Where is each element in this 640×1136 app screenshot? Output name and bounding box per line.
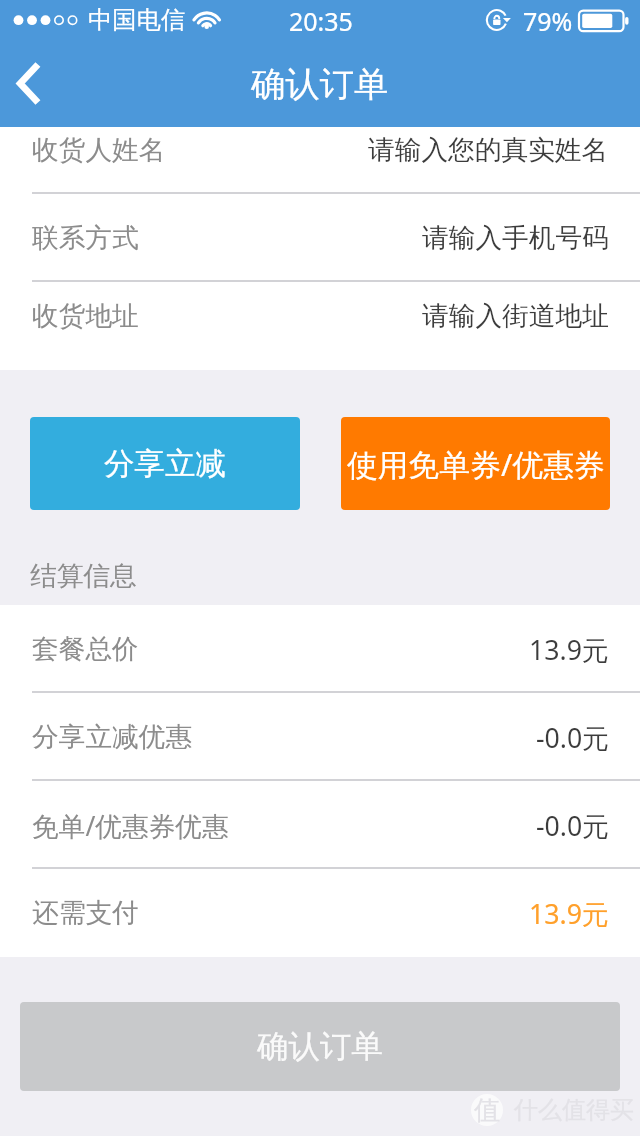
button[interactable]: 联系方式 [0, 194, 640, 282]
button[interactable]: 免单/优惠券优惠 [0, 781, 640, 869]
staticText: 结算信息 [30, 559, 137, 593]
staticText: 请输入街道地址 [422, 299, 609, 333]
staticText: 什么值得买 [514, 1095, 634, 1125]
staticText: 确认订单 [257, 1027, 383, 1067]
staticText: 分享立减优惠 [32, 720, 193, 754]
button[interactable]: Back [0, 40, 70, 127]
staticText: 还需支付 [32, 896, 139, 930]
button[interactable]: 使用免单券/优惠券 [341, 417, 610, 510]
button[interactable]: 分享立减 [30, 417, 300, 510]
staticText: 分享立减 [104, 445, 226, 483]
staticText: 20:35 [289, 4, 353, 38]
button[interactable]: 套餐总价 [0, 605, 640, 693]
staticText: 套餐总价 [32, 632, 139, 666]
staticText: 免单/优惠券优惠 [32, 807, 229, 843]
staticText: 中国电信 [88, 5, 186, 36]
staticText: 值 [474, 1094, 500, 1126]
button[interactable]: 收货人姓名 [0, 127, 640, 194]
staticText: 使用免单券/优惠券 [347, 443, 605, 485]
button[interactable]: 收货地址 [0, 282, 640, 349]
staticText: -0.0元 [536, 719, 609, 755]
staticText: 79% [523, 4, 573, 38]
button[interactable]: 分享立减优惠 [0, 693, 640, 781]
staticText: 请输入您的真实姓名 [368, 133, 609, 167]
staticText: 确认订单 [251, 63, 389, 106]
button[interactable]: 还需支付 [0, 869, 640, 957]
staticText: 收货地址 [32, 299, 139, 333]
staticText: -0.0元 [536, 807, 609, 843]
staticText: 收货人姓名 [32, 133, 166, 167]
staticText: 13.9元 [529, 895, 609, 931]
staticText: 联系方式 [32, 221, 139, 255]
button[interactable]: 确认订单 [20, 1002, 620, 1091]
staticText: 13.9元 [529, 631, 609, 667]
staticText: 请输入手机号码 [422, 221, 609, 255]
